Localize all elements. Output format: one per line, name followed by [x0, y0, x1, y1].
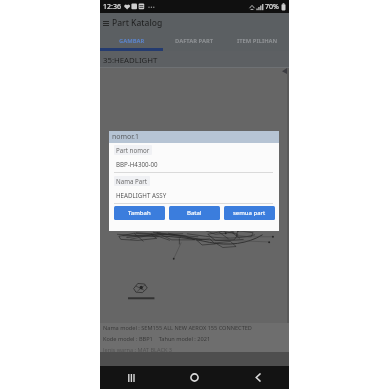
staticText: Kode model : BBP1 Tahun model : 2021 — [103, 335, 211, 343]
staticText: Part nomor — [116, 146, 150, 154]
staticText: HEADLIGHT ASSY — [116, 191, 167, 199]
button[interactable]: GAMBAR — [100, 33, 163, 48]
staticText: 12:36 — [103, 2, 121, 12]
staticText: 35:HEADLIGHT — [103, 55, 158, 66]
staticText: 70% — [265, 2, 279, 12]
button[interactable]: Menu — [101, 18, 111, 28]
staticText: ITEM PILIHAN — [237, 37, 278, 45]
staticText: GAMBAR — [119, 37, 145, 45]
staticText: nomor.1 — [112, 132, 139, 142]
button[interactable]: Back — [226, 366, 289, 389]
staticText: DAFTAR PART — [175, 37, 214, 45]
button[interactable]: Recents — [100, 366, 163, 389]
button[interactable]: Tambah — [114, 206, 165, 220]
staticText: BBP-H4300-00 — [116, 160, 158, 168]
button[interactable]: Home — [163, 366, 226, 389]
button[interactable]: DAFTAR PART — [163, 33, 226, 48]
staticText: Part Katalog — [112, 17, 163, 29]
staticText: Batal — [187, 209, 202, 217]
staticText: Tambah — [128, 209, 151, 217]
staticText: semua part — [233, 209, 266, 217]
staticText: Nama model : SEM155 ALL NEW AEROX 155 CO… — [103, 324, 252, 332]
staticText: Nama Part — [116, 177, 148, 185]
button[interactable]: ITEM PILIHAN — [226, 33, 289, 48]
button[interactable]: Batal — [169, 206, 220, 220]
staticText: Jenis warna : MAT BLACK 3 — [103, 346, 173, 352]
button[interactable]: semua part — [224, 206, 275, 220]
